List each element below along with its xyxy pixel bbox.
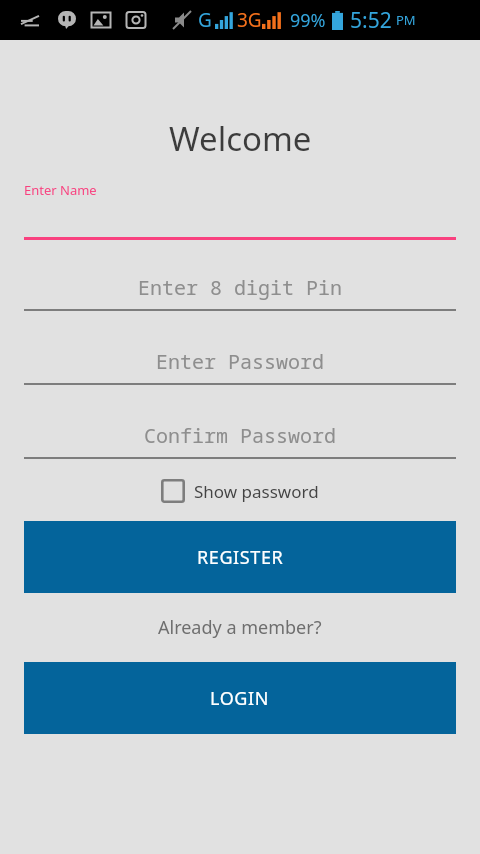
staticText: PM xyxy=(396,11,416,29)
staticText: 3G xyxy=(237,7,262,33)
button[interactable]: Show password xyxy=(0,479,480,503)
staticText: LOGIN xyxy=(210,686,270,711)
staticText: 99% xyxy=(290,8,326,33)
button[interactable]: REGISTER xyxy=(24,521,456,593)
staticText: REGISTER xyxy=(197,545,284,570)
button[interactable]: Enter Password xyxy=(24,348,456,385)
button[interactable]: Enter 8 digit Pin xyxy=(24,274,456,311)
staticText: Welcome xyxy=(169,116,312,161)
staticText: Enter Password xyxy=(156,348,324,375)
staticText: Confirm Password xyxy=(144,422,336,449)
staticText: Enter 8 digit Pin xyxy=(138,274,342,301)
button[interactable]: LOGIN xyxy=(24,662,456,734)
staticText: Show password xyxy=(194,480,319,503)
button[interactable]: Confirm Password xyxy=(24,422,456,459)
staticText: G xyxy=(198,7,212,33)
staticText: 5:52 xyxy=(350,6,392,35)
staticText: Already a member? xyxy=(158,615,322,640)
staticText: Enter Name xyxy=(24,181,97,199)
button[interactable]: Enter Name xyxy=(24,181,456,240)
